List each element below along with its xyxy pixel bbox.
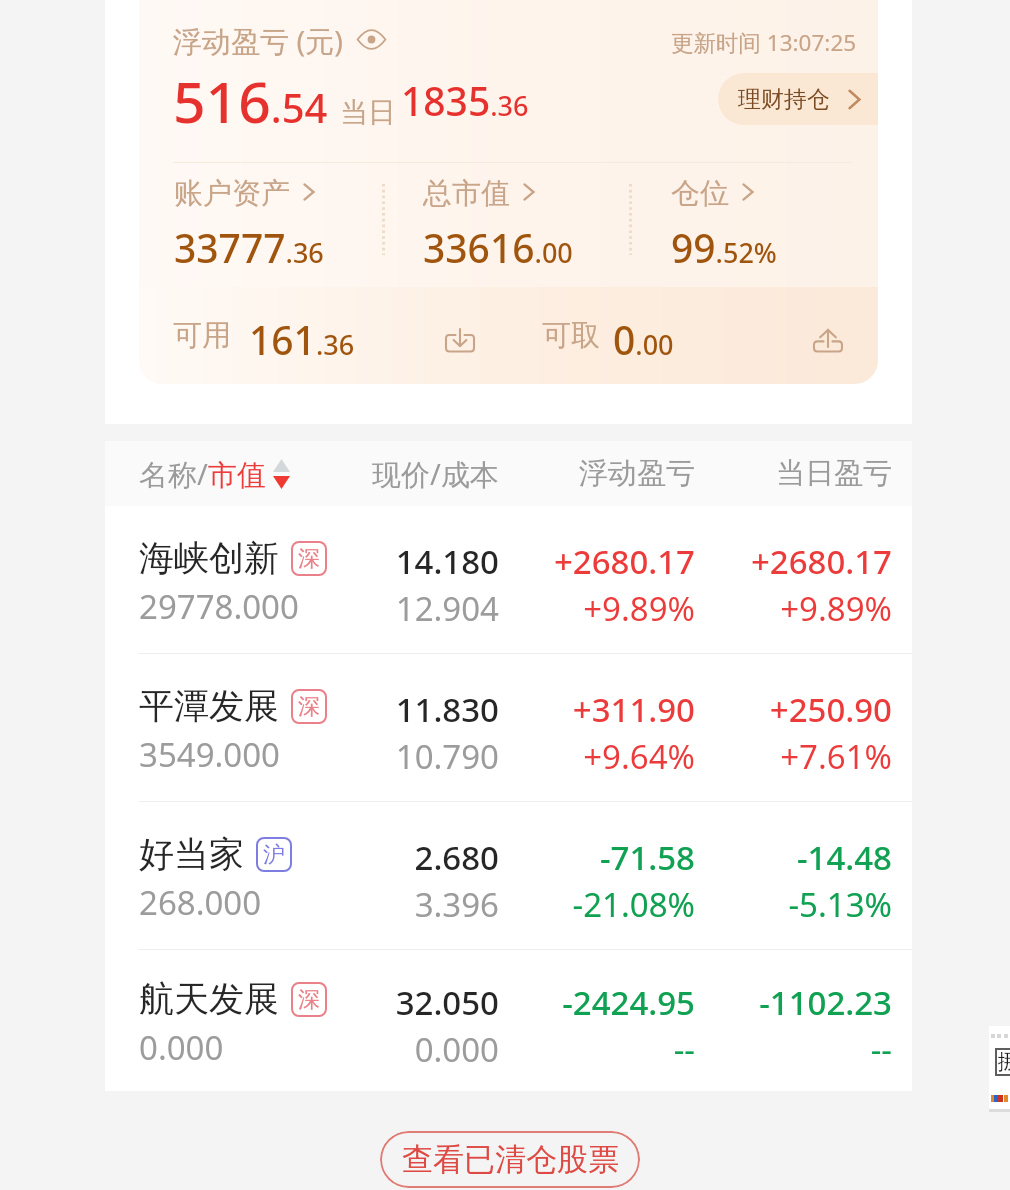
staticText: 29778.000 — [139, 584, 299, 629]
staticText: 现价/成本 — [372, 454, 499, 494]
staticText: 沪 — [263, 841, 285, 869]
staticText: 当日盈亏 — [776, 455, 892, 492]
staticText: 3.396 — [414, 882, 499, 927]
staticText: 99.52% — [671, 221, 777, 274]
staticText: 11.830 — [395, 687, 499, 732]
button[interactable]: 仓位 — [671, 175, 777, 274]
button[interactable]: 航天发展 — [105, 950, 912, 1091]
staticText: 总市值 — [423, 175, 510, 209]
staticText: 航天发展 — [139, 977, 279, 1021]
staticText: 10.790 — [395, 734, 499, 779]
button[interactable]: 可用 — [173, 313, 355, 357]
staticText: 12.904 — [395, 586, 499, 631]
button[interactable]: 现价/成本 — [339, 454, 499, 494]
button[interactable]: 名称/市值 — [139, 441, 290, 506]
staticText: 14.180 — [395, 539, 499, 584]
staticText: 1835.36 — [401, 74, 529, 126]
staticText: -- — [870, 1027, 892, 1072]
staticText: 浮动盈亏 — [579, 455, 695, 492]
staticText: 账户资产 — [174, 175, 290, 209]
staticText: -21.08% — [572, 882, 695, 927]
staticText: 3549.000 — [139, 732, 280, 777]
button[interactable]: 可取 — [542, 313, 674, 357]
staticText: -- — [673, 1027, 695, 1072]
staticText: -14.48 — [796, 835, 892, 880]
staticText: 查看已清仓股票 — [402, 1140, 619, 1179]
button[interactable]: 海峡创新 — [105, 506, 912, 653]
staticText: 挪 — [998, 1049, 1010, 1075]
staticText: 32.050 — [395, 980, 499, 1025]
staticText: +7.61% — [780, 734, 892, 779]
staticText: -5.13% — [788, 882, 892, 927]
staticText: 当日 — [340, 95, 396, 130]
staticText: 平潭发展 — [139, 684, 279, 728]
button[interactable]: 总市值 — [423, 175, 573, 274]
staticText: +9.89% — [780, 586, 892, 631]
button[interactable]: 浮动盈亏 (元) — [173, 21, 387, 57]
button[interactable]: 当日盈亏 — [695, 455, 892, 492]
staticText: 33616.00 — [423, 221, 573, 274]
staticText: 268.000 — [139, 880, 262, 925]
staticText: 2.680 — [414, 835, 499, 880]
staticText: +9.64% — [583, 734, 695, 779]
staticText: 可取 — [542, 317, 600, 354]
staticText: 161.36 — [249, 313, 355, 357]
staticText: 深 — [298, 986, 320, 1014]
staticText: 好当家 — [139, 832, 244, 876]
staticText: 海峡创新 — [139, 536, 279, 580]
other: Toggle amount visibility — [355, 27, 387, 51]
staticText: 更新时间 13:07:25 — [671, 27, 857, 58]
button[interactable]: 理财持仓 — [718, 73, 878, 125]
staticText: +2680.17 — [553, 539, 695, 584]
button[interactable]: 浮动盈亏 — [499, 455, 695, 492]
staticText: 可用 — [173, 317, 231, 354]
staticText: +250.90 — [769, 687, 892, 732]
staticText: +311.90 — [572, 687, 695, 732]
staticText: -71.58 — [599, 835, 695, 880]
button[interactable]: 查看已清仓股票 — [380, 1131, 640, 1188]
staticText: 深 — [298, 693, 320, 721]
staticText: 0.000 — [414, 1027, 499, 1072]
staticText: 516.54 — [173, 62, 328, 128]
button[interactable]: 平潭发展 — [105, 654, 912, 801]
staticText: +9.89% — [583, 586, 695, 631]
staticText: 仓位 — [671, 175, 729, 209]
staticText: 33777.36 — [174, 221, 324, 274]
staticText: 理财持仓 — [738, 85, 830, 114]
button[interactable]: Withdraw funds — [806, 318, 850, 362]
staticText: +2680.17 — [750, 539, 892, 584]
button[interactable]: 好当家 — [105, 802, 912, 949]
staticText: 0.000 — [139, 1025, 224, 1070]
staticText: 0.00 — [613, 313, 674, 357]
staticText: -2424.95 — [562, 980, 695, 1025]
button[interactable]: 账户资产 — [174, 175, 324, 274]
staticText: 深 — [298, 545, 320, 573]
staticText: 浮动盈亏 (元) — [173, 21, 343, 57]
button[interactable]: Floating shortcut panel — [989, 1026, 1010, 1112]
button[interactable]: Deposit funds — [438, 318, 482, 362]
staticText: 名称/市值 — [139, 454, 266, 494]
staticText: -1102.23 — [759, 980, 892, 1025]
